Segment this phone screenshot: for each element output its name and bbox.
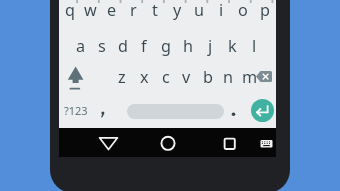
staticText: a xyxy=(76,35,86,57)
button[interactable]: g xyxy=(155,29,177,62)
button[interactable] xyxy=(62,61,90,94)
button[interactable]: w xyxy=(80,0,101,26)
staticText: u xyxy=(194,0,205,21)
button[interactable]: n xyxy=(218,60,239,93)
button[interactable]: o xyxy=(232,0,254,26)
button[interactable]: m xyxy=(239,60,260,93)
staticText: d xyxy=(118,35,128,57)
staticText: n xyxy=(223,66,234,88)
button[interactable]: y xyxy=(166,0,188,26)
staticText: g xyxy=(161,35,171,57)
staticText: z xyxy=(118,66,126,88)
staticText: s xyxy=(98,35,106,57)
button[interactable]: p xyxy=(254,0,276,26)
button[interactable]: u xyxy=(188,0,210,26)
staticText: p xyxy=(260,0,270,21)
staticText: i xyxy=(219,0,224,21)
staticText: q xyxy=(65,0,75,21)
button[interactable]: t xyxy=(144,0,166,26)
button[interactable]: r xyxy=(122,0,144,26)
staticText: e xyxy=(107,0,117,21)
button[interactable]: a xyxy=(70,29,91,62)
button[interactable] xyxy=(257,137,276,151)
staticText: f xyxy=(141,35,147,57)
staticText: m xyxy=(242,66,258,88)
staticText: w xyxy=(84,0,97,21)
button[interactable]: d xyxy=(112,29,133,62)
button[interactable] xyxy=(251,99,274,122)
button[interactable]: k xyxy=(221,29,243,62)
button[interactable]: s xyxy=(91,29,112,62)
button[interactable]: l xyxy=(243,29,265,62)
button[interactable] xyxy=(220,134,240,154)
button[interactable]: j xyxy=(199,29,221,62)
staticText: y xyxy=(173,0,182,21)
staticText: h xyxy=(183,35,194,57)
button[interactable]: z xyxy=(111,60,133,93)
button[interactable]: x xyxy=(133,60,155,93)
staticText: c xyxy=(162,66,170,88)
staticText: x xyxy=(140,66,149,88)
button[interactable]: q xyxy=(59,0,80,26)
button[interactable] xyxy=(96,133,121,153)
staticText: r xyxy=(130,0,137,21)
button[interactable]: c xyxy=(155,60,176,93)
button[interactable]: h xyxy=(177,29,199,62)
staticText: b xyxy=(203,66,213,88)
staticText: k xyxy=(228,35,237,57)
staticText: v xyxy=(182,66,191,88)
button[interactable]: i xyxy=(210,0,232,26)
button[interactable]: f xyxy=(133,29,155,62)
staticText: ?123 xyxy=(64,103,88,118)
button[interactable]: v xyxy=(176,60,197,93)
button[interactable] xyxy=(250,61,276,94)
button[interactable] xyxy=(158,133,178,153)
button[interactable] xyxy=(127,104,224,119)
button[interactable]: b xyxy=(197,60,218,93)
staticText: t xyxy=(152,0,158,21)
staticText: j xyxy=(208,35,213,57)
staticText: o xyxy=(238,0,248,21)
button[interactable]: e xyxy=(101,0,122,26)
button[interactable]: ?123 xyxy=(59,96,93,125)
staticText: l xyxy=(252,35,257,57)
